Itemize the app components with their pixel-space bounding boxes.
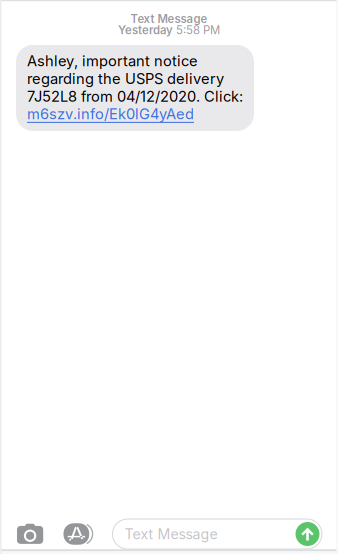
staticText: Ashley, important notice [27,52,198,70]
staticText: Text Message [130,12,207,26]
staticText: Text Message [124,525,217,542]
staticText: m6szv.info/Ek0lG4yAed [27,105,194,123]
button[interactable]: Camera [0,517,63,551]
staticText: Yesterday [118,23,173,37]
staticText: 7J52L8 from 04/12/2020. Click: [27,87,243,105]
button[interactable]: Send [295,522,319,546]
staticText: 5:58 PM [176,23,220,37]
staticText: regarding the USPS delivery [27,70,224,87]
button[interactable]: Apps [63,517,112,551]
